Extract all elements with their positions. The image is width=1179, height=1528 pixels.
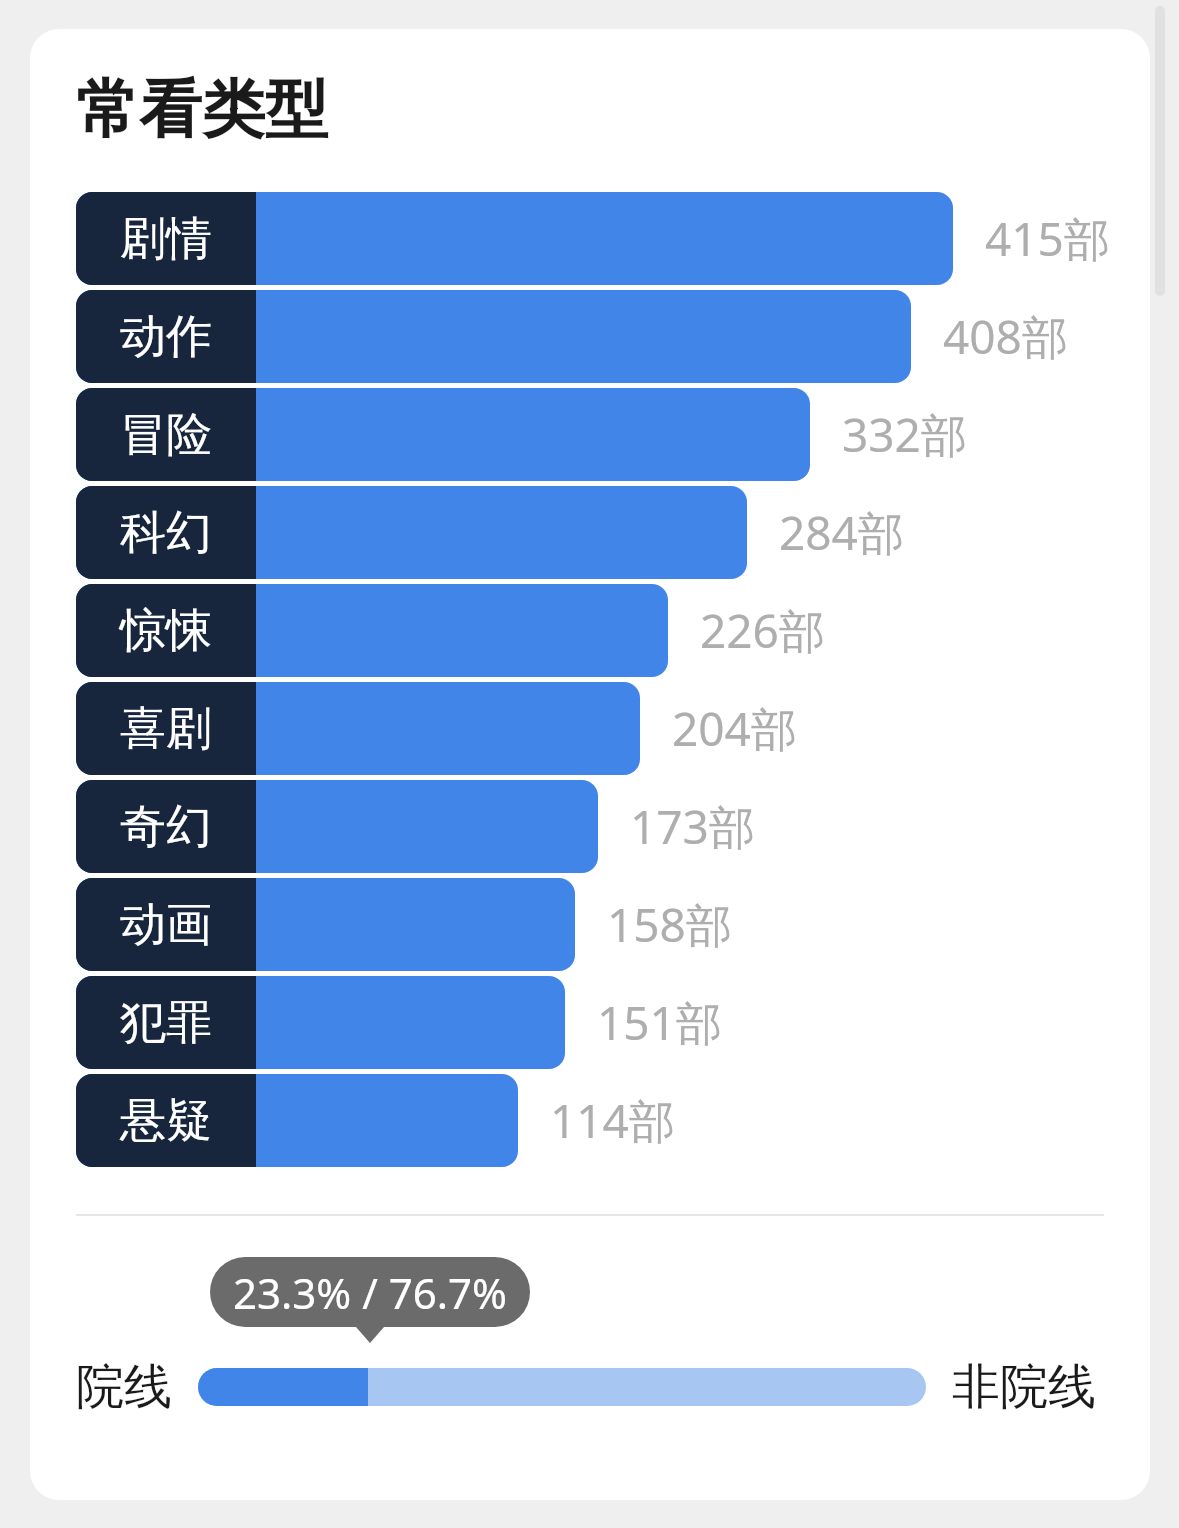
button[interactable]: 喜剧 — [30, 682, 1150, 775]
staticText: 剧情 — [120, 210, 212, 268]
staticText: 喜剧 — [120, 700, 212, 758]
staticText: 114部 — [550, 1089, 675, 1152]
staticText: 动画 — [120, 896, 212, 954]
staticText: 常看类型 — [76, 70, 328, 149]
button[interactable]: 23.3% / 76.7% — [210, 1257, 530, 1327]
staticText: 冒险 — [120, 406, 212, 464]
button[interactable]: 剧情 — [30, 192, 1150, 285]
staticText: 院线 — [76, 1357, 172, 1417]
button[interactable]: 悬疑 — [30, 1074, 1150, 1167]
button[interactable]: 犯罪 — [30, 976, 1150, 1069]
staticText: 226部 — [700, 599, 825, 662]
staticText: 204部 — [672, 697, 797, 760]
staticText: 动作 — [120, 308, 212, 366]
staticText: 173部 — [630, 795, 755, 858]
staticText: 284部 — [779, 501, 904, 564]
button[interactable]: 科幻 — [30, 486, 1150, 579]
staticText: 151部 — [597, 991, 722, 1054]
button[interactable]: 动画 — [30, 878, 1150, 971]
staticText: 非院线 — [952, 1357, 1096, 1417]
button[interactable]: 惊悚 — [30, 584, 1150, 677]
staticText: 惊悚 — [120, 602, 212, 660]
staticText: 408部 — [943, 305, 1068, 368]
staticText: 23.3% / 76.7% — [233, 1264, 507, 1321]
staticText: 奇幻 — [120, 798, 212, 856]
button[interactable] — [198, 1368, 926, 1406]
staticText: 415部 — [985, 207, 1110, 270]
staticText: 332部 — [842, 403, 967, 466]
staticText: 158部 — [607, 893, 732, 956]
button[interactable]: 动作 — [30, 290, 1150, 383]
staticText: 科幻 — [120, 504, 212, 562]
button[interactable]: 冒险 — [30, 388, 1150, 481]
staticText: 犯罪 — [120, 994, 212, 1052]
button[interactable]: 奇幻 — [30, 780, 1150, 873]
staticText: 悬疑 — [120, 1092, 212, 1150]
